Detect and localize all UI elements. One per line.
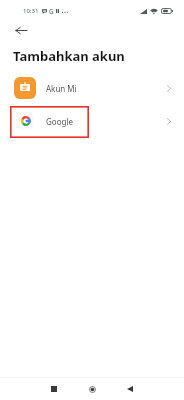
button[interactable]: Recents — [35, 378, 72, 400]
staticText: Akun Mi — [46, 83, 77, 94]
staticText: Google — [46, 116, 73, 127]
button[interactable]: Back — [111, 378, 148, 400]
staticText: 10:31 — [23, 7, 39, 15]
button[interactable]: Google — [0, 110, 184, 132]
staticText: G — [49, 7, 54, 15]
button[interactable]: Akun Mi — [0, 77, 184, 99]
staticText: Tambahkan akun — [13, 47, 125, 65]
button[interactable]: Home — [74, 378, 111, 400]
button[interactable]: Back — [9, 19, 32, 42]
